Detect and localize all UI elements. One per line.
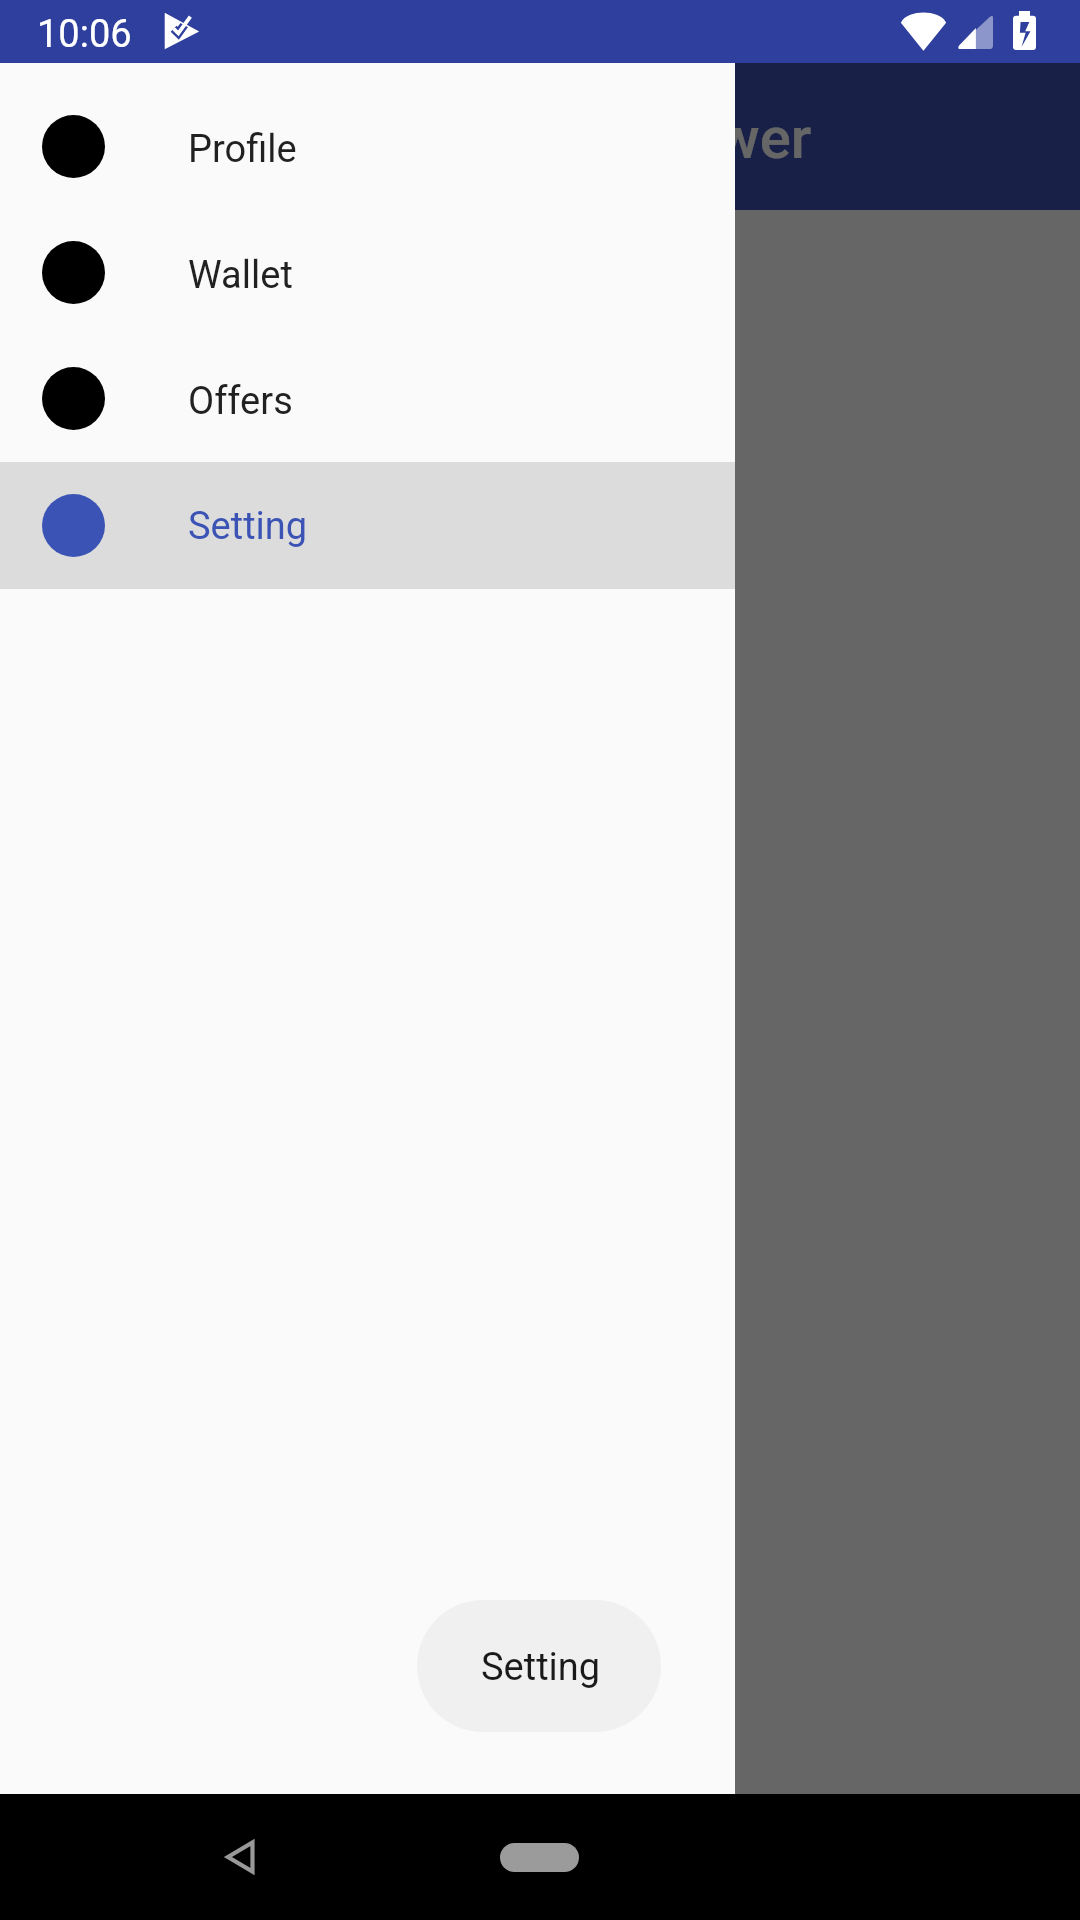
button[interactable]: Close navigation drawer bbox=[0, 63, 1080, 1794]
button[interactable]: Setting bbox=[417, 1600, 661, 1732]
staticText: 10:06 bbox=[37, 12, 132, 57]
staticText: Drawer bbox=[628, 104, 812, 172]
staticText: Setting bbox=[188, 504, 308, 549]
button[interactable]: Profile bbox=[0, 83, 735, 209]
other: Battery charging bbox=[1013, 11, 1036, 50]
staticText: Profile bbox=[188, 127, 297, 172]
button[interactable]: Offers bbox=[0, 335, 735, 461]
staticText: Wallet bbox=[188, 253, 293, 298]
other: Wi-Fi bbox=[901, 13, 946, 50]
button[interactable]: Home bbox=[479, 1822, 599, 1892]
button[interactable]: Setting bbox=[0, 462, 735, 589]
staticText: Offers bbox=[188, 379, 293, 424]
other: Mobile signal bbox=[957, 14, 993, 49]
other: Play Store notification bbox=[163, 12, 199, 50]
button[interactable]: Wallet bbox=[0, 209, 735, 335]
button[interactable]: Back bbox=[200, 1817, 280, 1897]
staticText: Setting bbox=[481, 1645, 601, 1690]
